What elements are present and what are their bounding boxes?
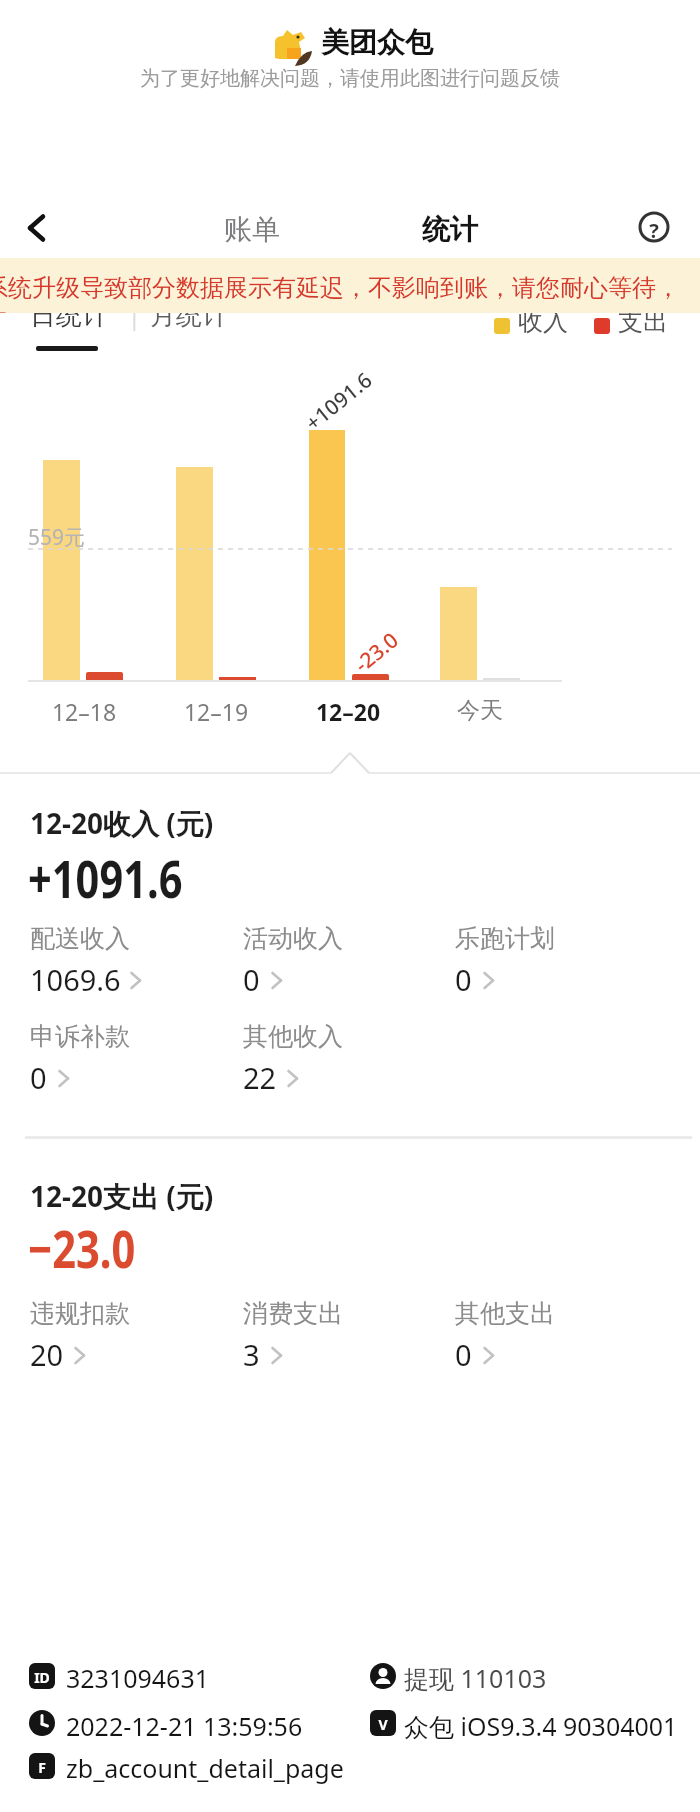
staticText: 月统计 (150, 299, 228, 332)
staticText: 12–19 (174, 696, 258, 727)
button[interactable] (18, 206, 62, 250)
staticText: 众包 iOS9.3.4 90304001 (404, 1709, 678, 1743)
button[interactable]: 配送收入 (30, 923, 215, 1005)
staticText: zb_account_detail_page (66, 1751, 344, 1785)
staticText: 提现 110103 (404, 1661, 547, 1695)
staticText: 统计 (395, 212, 505, 247)
staticText: 今天 (438, 696, 522, 725)
staticText: 消费支出 (243, 1298, 343, 1329)
staticText: 0 (30, 1058, 47, 1097)
staticText: −23.0 (28, 1212, 136, 1283)
staticText: 账单 (197, 212, 307, 247)
staticText: 2022-12-21 13:59:56 (66, 1709, 303, 1743)
button[interactable]: ? (638, 211, 670, 243)
staticText: 1069.6 (30, 960, 121, 999)
button[interactable]: 其他收入 (243, 1021, 428, 1103)
staticText: 为了更好地解决问题，请使用此图进行问题反馈 (0, 66, 700, 91)
staticText: +1091.6 (295, 362, 383, 441)
button[interactable]: 统计 (395, 206, 505, 252)
button[interactable]: 消费支出 (243, 1298, 428, 1380)
button[interactable]: 活动收入 (243, 923, 428, 1005)
staticText: 3231094631 (66, 1661, 210, 1695)
staticText: F (29, 1758, 55, 1777)
staticText: 22 (243, 1058, 277, 1097)
button[interactable]: 月统计 (148, 292, 236, 338)
staticText: 20 (30, 1335, 64, 1374)
staticText: 12-20收入 (元) (30, 804, 214, 842)
staticText: -23.0 (340, 619, 412, 685)
staticText: 其他收入 (243, 1021, 343, 1052)
staticText: 559元 (28, 523, 86, 552)
staticText: +1091.6 (28, 842, 183, 913)
staticText: 3 (243, 1335, 260, 1374)
staticText: 支出 (618, 306, 668, 337)
staticText: 配送收入 (30, 923, 130, 954)
staticText: 其他支出 (455, 1298, 555, 1329)
staticText: 12–18 (42, 696, 126, 727)
button[interactable]: 违规扣款 (30, 1298, 215, 1380)
button[interactable]: 申诉补款 (30, 1021, 215, 1103)
staticText: 12–20 (306, 696, 390, 727)
staticText: 0 (455, 960, 472, 999)
staticText: | (128, 300, 141, 331)
staticText: 违规扣款 (30, 1298, 130, 1329)
button[interactable]: 乐跑计划 (455, 923, 640, 1005)
staticText: 申诉补款 (30, 1021, 130, 1052)
staticText: 活动收入 (243, 923, 343, 954)
staticText: ID (29, 1668, 55, 1687)
staticText: 收入 (518, 306, 568, 337)
button[interactable] (24, 294, 110, 354)
staticText: 美团众包 (321, 25, 433, 60)
staticText: 日统计 (30, 299, 108, 332)
button[interactable]: 账单 (197, 206, 307, 252)
staticText: 12-20支出 (元) (30, 1177, 214, 1215)
button[interactable]: 其他支出 (455, 1298, 640, 1380)
staticText: 0 (243, 960, 260, 999)
staticText: ? (638, 217, 670, 244)
staticText: V (370, 1715, 396, 1734)
staticText: 系统升级导致部分数据展示有延迟，不影响到账，请您耐心等待，如 (0, 273, 684, 313)
staticText: 乐跑计划 (455, 923, 555, 954)
staticText: 0 (455, 1335, 472, 1374)
